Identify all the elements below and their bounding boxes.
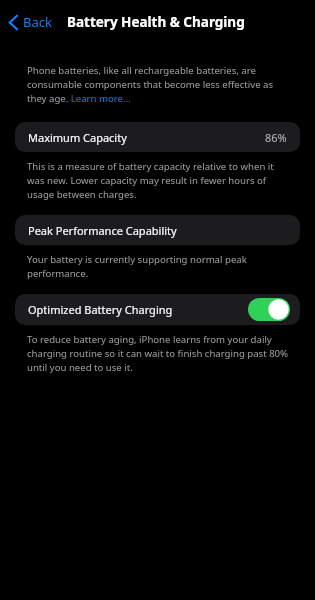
staticText: Peak Performance Capability — [28, 223, 177, 238]
staticText: Optimized Battery Charging — [28, 302, 173, 317]
staticText: This is a measure of battery capacity re… — [27, 160, 293, 201]
staticText: Maximum Capacity — [28, 130, 127, 145]
button[interactable]: Back — [5, 9, 55, 35]
button[interactable]: Maximum Capacity — [15, 122, 300, 152]
button[interactable]: Peak Performance Capability — [15, 215, 300, 245]
button[interactable]: Optimized Battery Charging — [15, 294, 300, 325]
staticText: 86% — [265, 130, 287, 145]
staticText: Battery Health & Charging — [67, 13, 245, 31]
staticText: Your battery is currently supporting nor… — [27, 253, 293, 280]
staticText: Back — [23, 13, 52, 31]
button[interactable]: Optimized Battery Charging toggle — [248, 298, 290, 321]
staticText: Phone batteries, like all rechargeable b… — [27, 64, 293, 105]
staticText: To reduce battery aging, iPhone learns f… — [27, 333, 293, 374]
